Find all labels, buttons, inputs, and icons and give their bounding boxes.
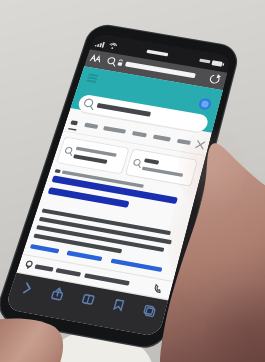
button[interactable]: Phone showing browser search results xyxy=(0,0,265,362)
other: Phone showing browser search results xyxy=(0,0,265,362)
